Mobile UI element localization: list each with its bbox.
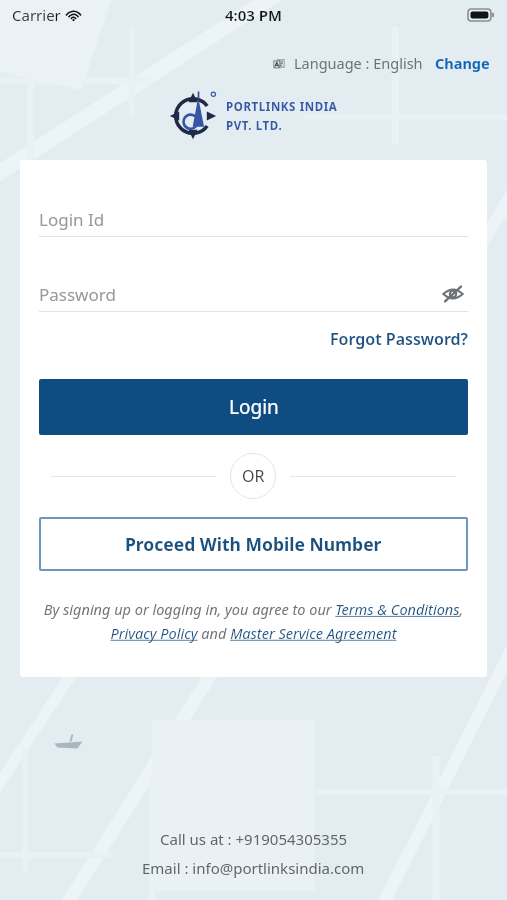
staticText: OR: [242, 465, 265, 487]
staticText: Login Id: [39, 208, 105, 231]
button[interactable]: Login: [39, 379, 468, 435]
button[interactable]: Language : English: [270, 50, 425, 76]
staticText: Change: [435, 53, 490, 73]
staticText: Email : info@portlinksindia.com: [142, 858, 365, 878]
button[interactable]: Login Id: [39, 202, 468, 236]
button[interactable]: By signing up or logging in, you agree t…: [39, 599, 468, 643]
staticText: Proceed With Mobile Number: [125, 532, 382, 556]
staticText: Call us at : +919054305355: [160, 829, 348, 849]
button[interactable]: Password: [39, 277, 468, 311]
staticText: Login: [229, 394, 279, 420]
staticText: PVT. LTD.: [226, 118, 283, 134]
staticText: PORTLINKS INDIA: [226, 99, 338, 115]
button[interactable]: Proceed With Mobile Number: [39, 517, 468, 571]
staticText: Password: [39, 283, 116, 306]
button[interactable]: Forgot Password?: [330, 325, 468, 353]
staticText: By signing up or logging in, you agree t…: [39, 599, 468, 643]
staticText: Forgot Password?: [330, 328, 468, 350]
button[interactable]: Show password: [438, 279, 468, 309]
staticText: Language : English: [294, 53, 423, 73]
staticText: Carrier: [12, 5, 61, 25]
button[interactable]: Change: [433, 50, 492, 76]
staticText: 4:03 PM: [225, 5, 282, 25]
